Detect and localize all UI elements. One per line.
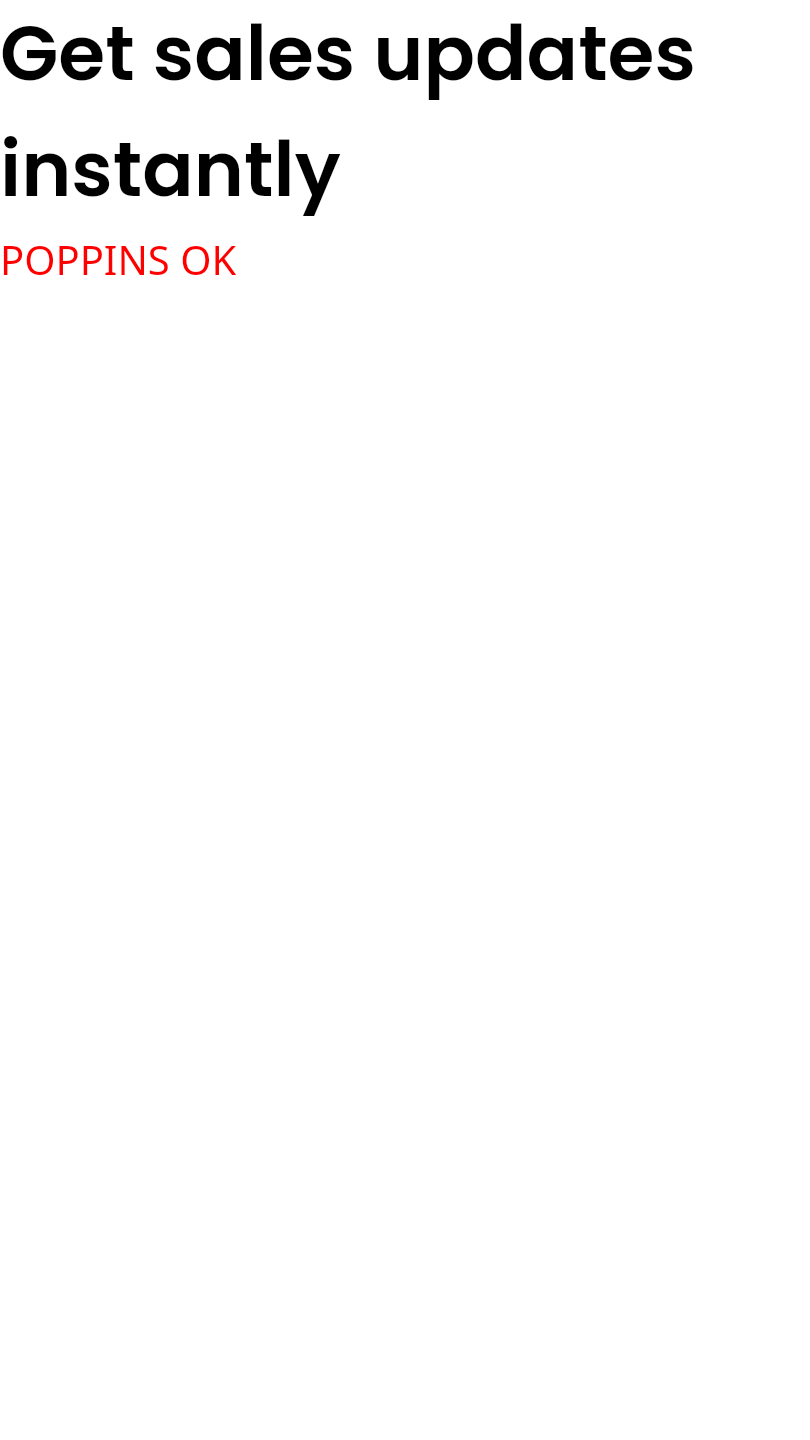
staticText: Get sales updates — [0, 0, 696, 106]
staticText: instantly — [0, 116, 341, 222]
staticText: POPPINS OK — [0, 232, 237, 286]
